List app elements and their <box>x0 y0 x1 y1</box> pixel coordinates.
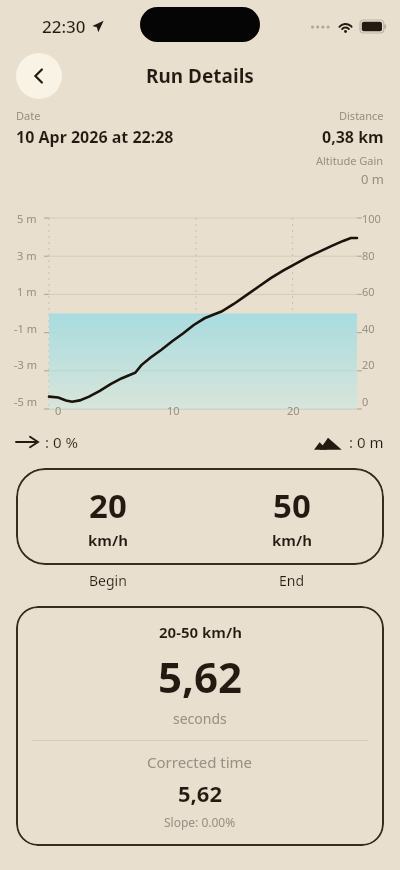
staticText: 20 <box>287 403 300 418</box>
staticText: 0 <box>55 403 62 418</box>
staticText: Begin <box>89 571 127 590</box>
button[interactable]: Back <box>16 53 62 99</box>
staticText: 22:30 <box>42 15 86 38</box>
staticText: 10 Apr 2026 at 22:28 <box>16 126 174 148</box>
staticText: 20 <box>362 357 375 372</box>
staticText: 5 m <box>17 211 37 226</box>
staticText: Slope: 0.00% <box>164 814 236 830</box>
staticText: Run Details <box>146 63 254 89</box>
button[interactable]: 20 <box>16 468 384 565</box>
staticText: 0 <box>362 394 369 409</box>
staticText: : 0 m <box>349 432 384 452</box>
staticText: 60 <box>362 284 375 299</box>
staticText: -1 m <box>14 321 37 336</box>
staticText: 0 m <box>361 170 384 188</box>
staticText: seconds <box>173 709 227 728</box>
staticText: 50 <box>273 483 311 528</box>
staticText: 5,62 <box>158 648 243 705</box>
staticText: End <box>279 571 305 590</box>
staticText: -3 m <box>14 357 37 372</box>
staticText: 80 <box>362 248 375 263</box>
staticText: -5 m <box>14 394 37 409</box>
staticText: km/h <box>88 530 128 550</box>
staticText: 20 <box>89 483 127 528</box>
staticText: 5,62 <box>178 778 223 808</box>
staticText: km/h <box>272 530 312 550</box>
staticText: Altitude Gain <box>316 153 384 168</box>
staticText: 100 <box>362 211 381 226</box>
staticText: 1 m <box>17 284 37 299</box>
staticText: 10 <box>167 403 180 418</box>
staticText: Date <box>16 108 41 123</box>
button[interactable]: 20-50 km/h <box>16 606 384 846</box>
staticText: Distance <box>339 108 384 123</box>
staticText: 40 <box>362 321 375 336</box>
staticText: 0,38 km <box>322 126 384 148</box>
staticText: : 0 % <box>45 432 78 452</box>
staticText: 20-50 km/h <box>159 622 242 642</box>
staticText: Corrected time <box>147 752 253 772</box>
staticText: 3 m <box>17 248 37 263</box>
